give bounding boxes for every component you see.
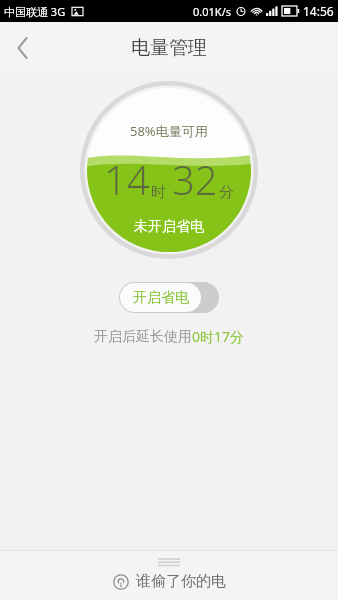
button[interactable]: 开启省电 [119,282,219,313]
staticText: 14 [104,152,150,206]
staticText: 谁偷了你的电 [136,572,226,591]
staticText: 14:56 [303,3,334,19]
staticText: 0时17分 [192,327,245,346]
staticText: 中国联通 3G [4,4,66,19]
staticText: 时 [151,183,166,202]
staticText: 开启后延长使用 [94,328,192,346]
staticText: 开启省电 [133,289,189,307]
button[interactable]: Back [0,25,46,71]
button[interactable]: 谁偷了你的电 [0,551,338,600]
staticText: 58%电量可用 [130,122,208,140]
staticText: 未开启省电 [134,218,204,236]
staticText: 电量管理 [131,36,207,60]
staticText: 32 [172,152,218,206]
staticText: 0.01K/s [193,4,231,19]
staticText: 分 [219,183,234,202]
